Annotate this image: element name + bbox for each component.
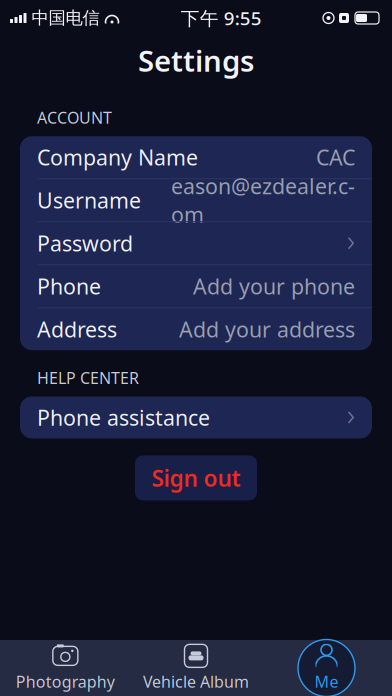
staticText: Photography — [16, 671, 115, 692]
staticText: 中国电信 — [31, 7, 99, 29]
button[interactable]: Phone assistance — [20, 396, 372, 438]
staticText: Phone — [37, 272, 101, 300]
button[interactable]: Sign out — [135, 455, 257, 500]
staticText: Me — [314, 671, 338, 692]
staticText: HELP CENTER — [37, 367, 139, 388]
staticText: Add your phone — [193, 272, 355, 300]
staticText: Settings — [138, 41, 254, 80]
staticText: ACCOUNT — [37, 107, 112, 128]
staticText: Company Name — [37, 143, 198, 171]
staticText: Sign out — [151, 463, 240, 493]
staticText: Me — [315, 671, 339, 692]
staticText: 下午 9:55 — [181, 6, 262, 30]
staticText: CAC — [316, 143, 355, 171]
button[interactable]: Address — [20, 308, 372, 350]
staticText: Password — [37, 229, 133, 257]
button[interactable]: Photography — [0, 640, 131, 696]
staticText: Phone assistance — [37, 403, 210, 432]
staticText: Vehicle Album — [143, 671, 249, 692]
staticText: Username — [37, 186, 141, 214]
button[interactable]: Company Name — [20, 136, 372, 178]
button[interactable]: Username — [20, 179, 372, 221]
button[interactable]: Vehicle Album — [131, 640, 261, 696]
staticText: Add your address — [179, 315, 355, 343]
button[interactable]: Password — [20, 222, 372, 264]
staticText: Address — [37, 315, 117, 343]
button[interactable]: Phone — [20, 265, 372, 307]
button[interactable]: Me — [261, 640, 392, 696]
staticText: eason@ezdealer.com — [171, 172, 355, 229]
